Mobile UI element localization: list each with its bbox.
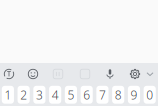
button[interactable]: 9 — [128, 86, 140, 104]
button[interactable]: Emoji — [22, 63, 44, 85]
staticText: 4 — [52, 87, 59, 103]
staticText: 6 — [83, 87, 90, 103]
button[interactable]: Input modes — [0, 63, 20, 85]
staticText: 5 — [67, 87, 74, 103]
button[interactable]: 6 — [81, 86, 93, 104]
button[interactable]: Keyboard settings — [124, 63, 146, 85]
button[interactable]: Dictation — [99, 63, 121, 85]
staticText: 9 — [130, 87, 137, 103]
staticText: 0 — [146, 87, 153, 103]
staticText: 2 — [20, 87, 27, 103]
staticText: 8 — [115, 87, 122, 103]
button[interactable]: 0 — [144, 86, 156, 104]
button[interactable]: 5 — [65, 86, 77, 104]
button[interactable]: 3 — [33, 86, 45, 104]
button[interactable]: 2 — [18, 86, 30, 104]
button[interactable]: Hide toolbar — [139, 63, 158, 85]
staticText: 1 — [4, 87, 11, 103]
button[interactable]: Stickers — [74, 63, 96, 85]
button[interactable]: 1 — [2, 86, 14, 104]
staticText: 7 — [99, 87, 106, 103]
staticText: 3 — [36, 87, 43, 103]
button[interactable]: 8 — [112, 86, 124, 104]
button[interactable]: GIFs — [47, 63, 69, 85]
button[interactable]: 7 — [96, 86, 109, 104]
button[interactable]: 4 — [49, 86, 61, 104]
